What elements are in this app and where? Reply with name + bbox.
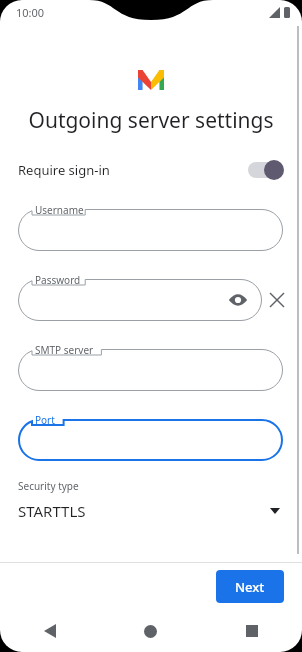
staticText: Security type bbox=[18, 479, 79, 493]
staticText: 10:00 bbox=[16, 5, 45, 20]
staticText: SMTP server bbox=[35, 343, 94, 357]
staticText: Require sign-in bbox=[18, 161, 110, 179]
staticText: Next bbox=[235, 578, 265, 596]
button[interactable]: Next bbox=[216, 570, 284, 603]
button[interactable]: Show password bbox=[226, 288, 250, 312]
staticText: Outgoing server settings bbox=[14, 106, 288, 135]
button[interactable]: Port bbox=[18, 407, 283, 461]
button[interactable]: Password bbox=[18, 267, 262, 321]
button[interactable]: Back bbox=[0, 610, 100, 652]
button[interactable]: Recent apps bbox=[201, 610, 302, 652]
button[interactable]: Require sign-in bbox=[0, 153, 302, 187]
staticText: Password bbox=[35, 273, 81, 287]
staticText: Username bbox=[35, 203, 84, 217]
staticText: Port bbox=[35, 413, 55, 427]
button[interactable]: Clear password bbox=[264, 287, 290, 313]
staticText: STARTTLS bbox=[18, 501, 86, 521]
button[interactable]: Home bbox=[100, 610, 201, 652]
button[interactable]: Security type bbox=[0, 479, 302, 521]
button[interactable]: SMTP server bbox=[18, 337, 283, 391]
button[interactable]: Username bbox=[18, 197, 283, 251]
